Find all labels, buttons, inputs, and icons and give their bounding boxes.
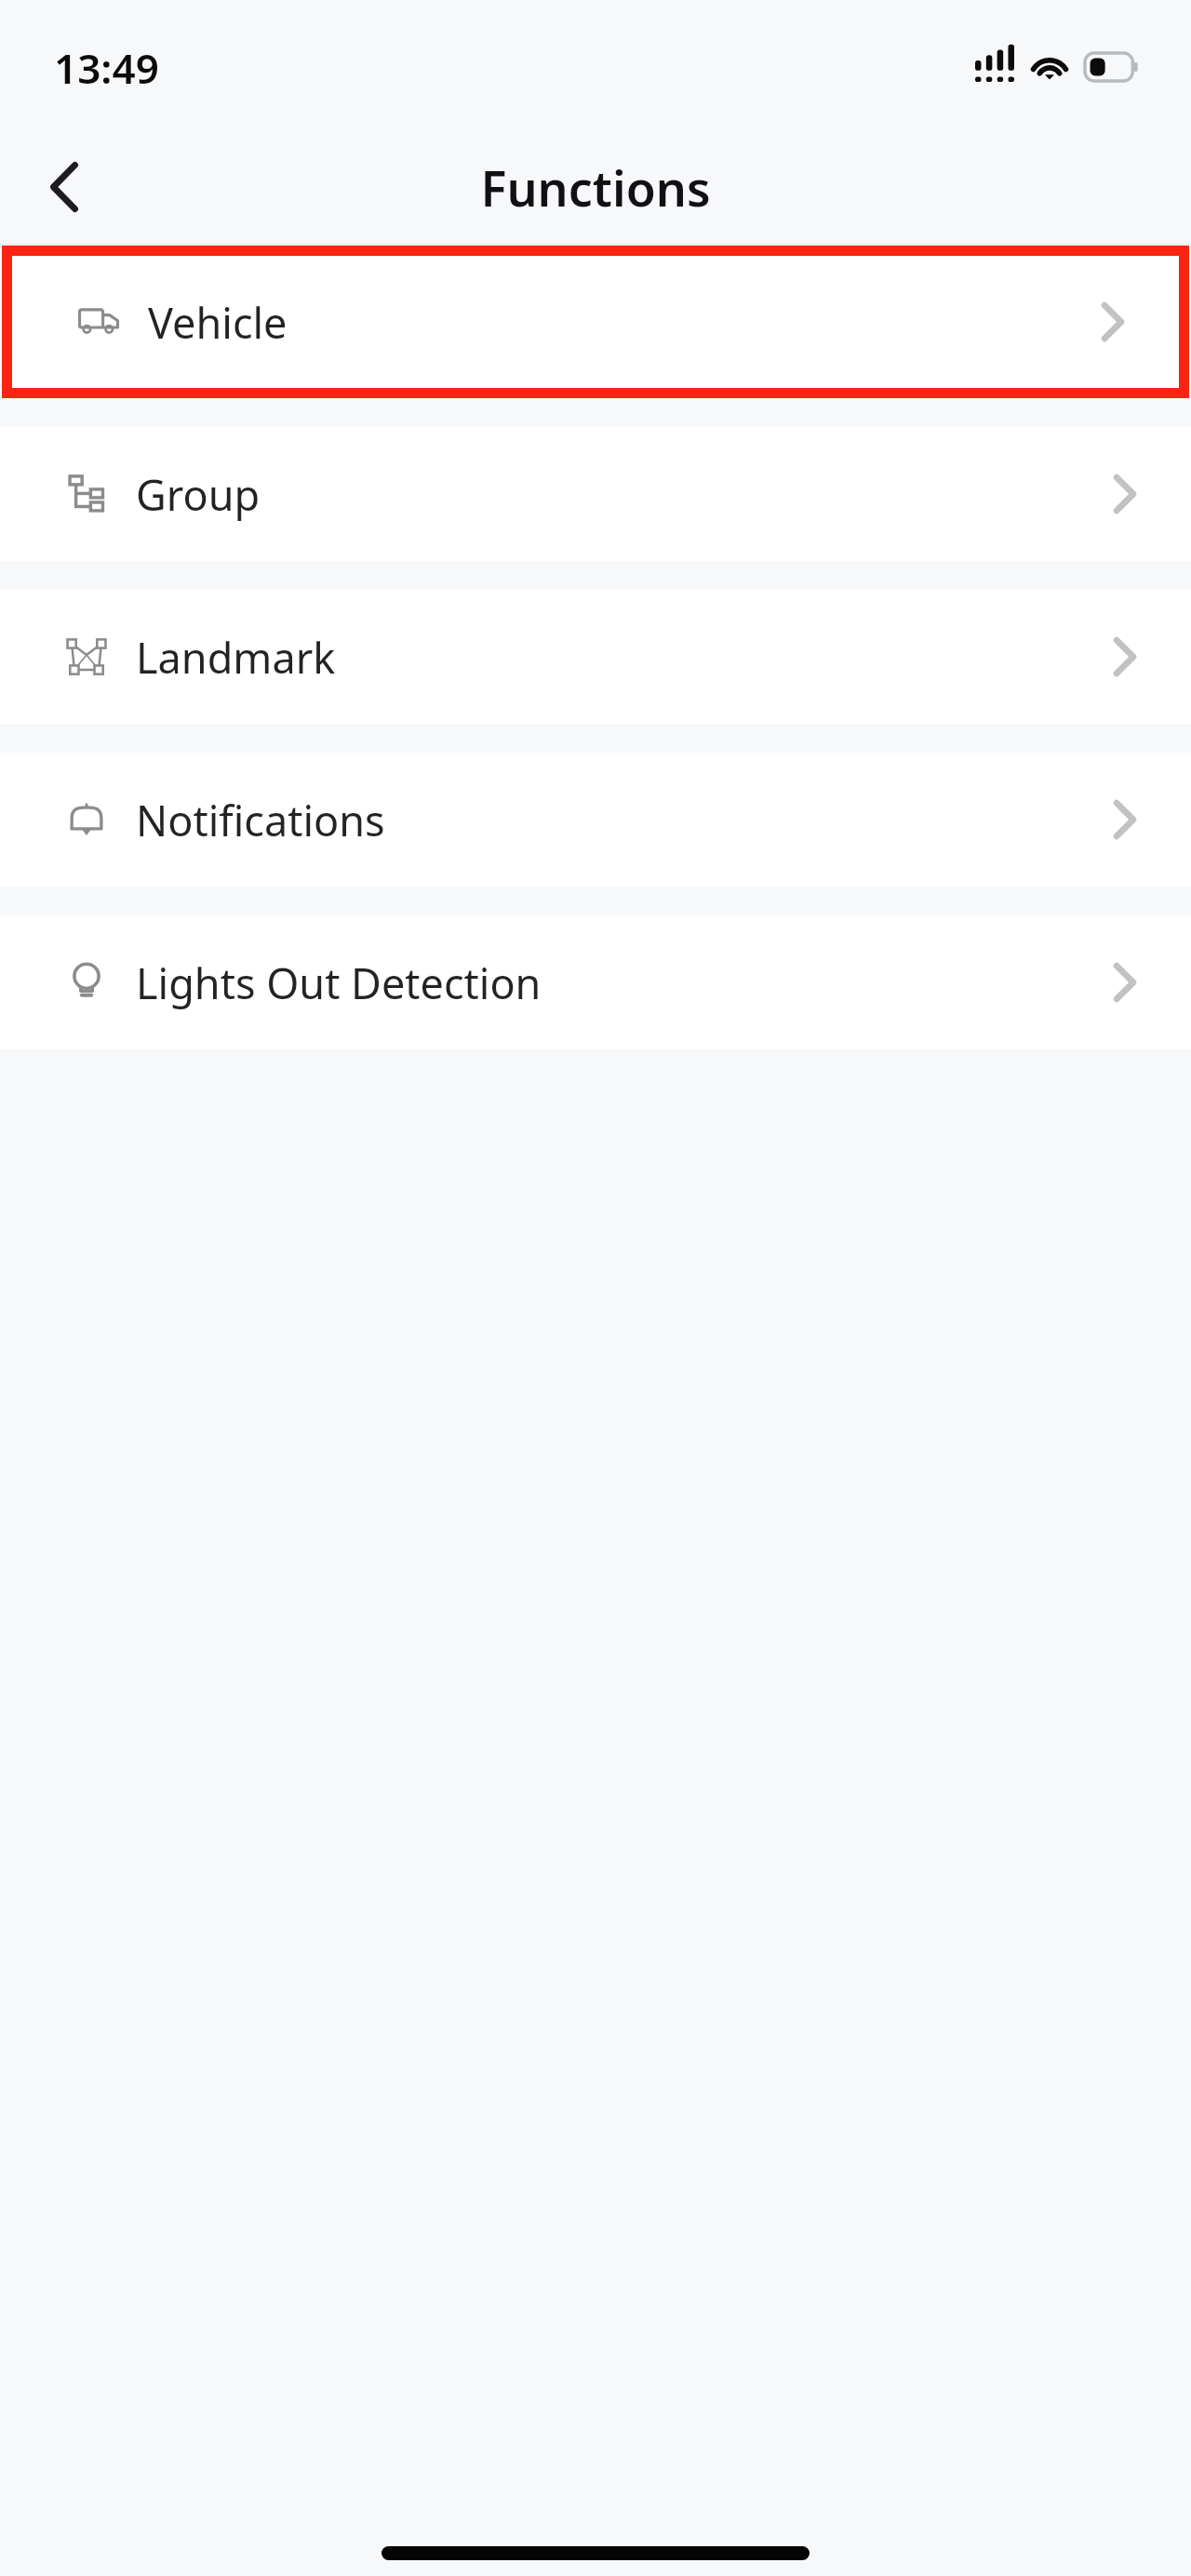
- button[interactable]: Back: [24, 147, 104, 227]
- button[interactable]: Vehicle: [12, 256, 1179, 388]
- button[interactable]: Landmark: [0, 590, 1191, 724]
- staticText: Landmark: [136, 629, 336, 686]
- staticText: 13:49: [54, 40, 159, 96]
- staticText: Functions: [0, 154, 1191, 220]
- staticText: Group: [136, 466, 261, 523]
- button[interactable]: Notifications: [0, 753, 1191, 887]
- staticText: Notifications: [136, 792, 385, 848]
- button[interactable]: Group: [0, 427, 1191, 561]
- staticText: Lights Out Detection: [136, 954, 542, 1011]
- button[interactable]: Lights Out Detection: [0, 915, 1191, 1049]
- staticText: Vehicle: [148, 294, 288, 351]
